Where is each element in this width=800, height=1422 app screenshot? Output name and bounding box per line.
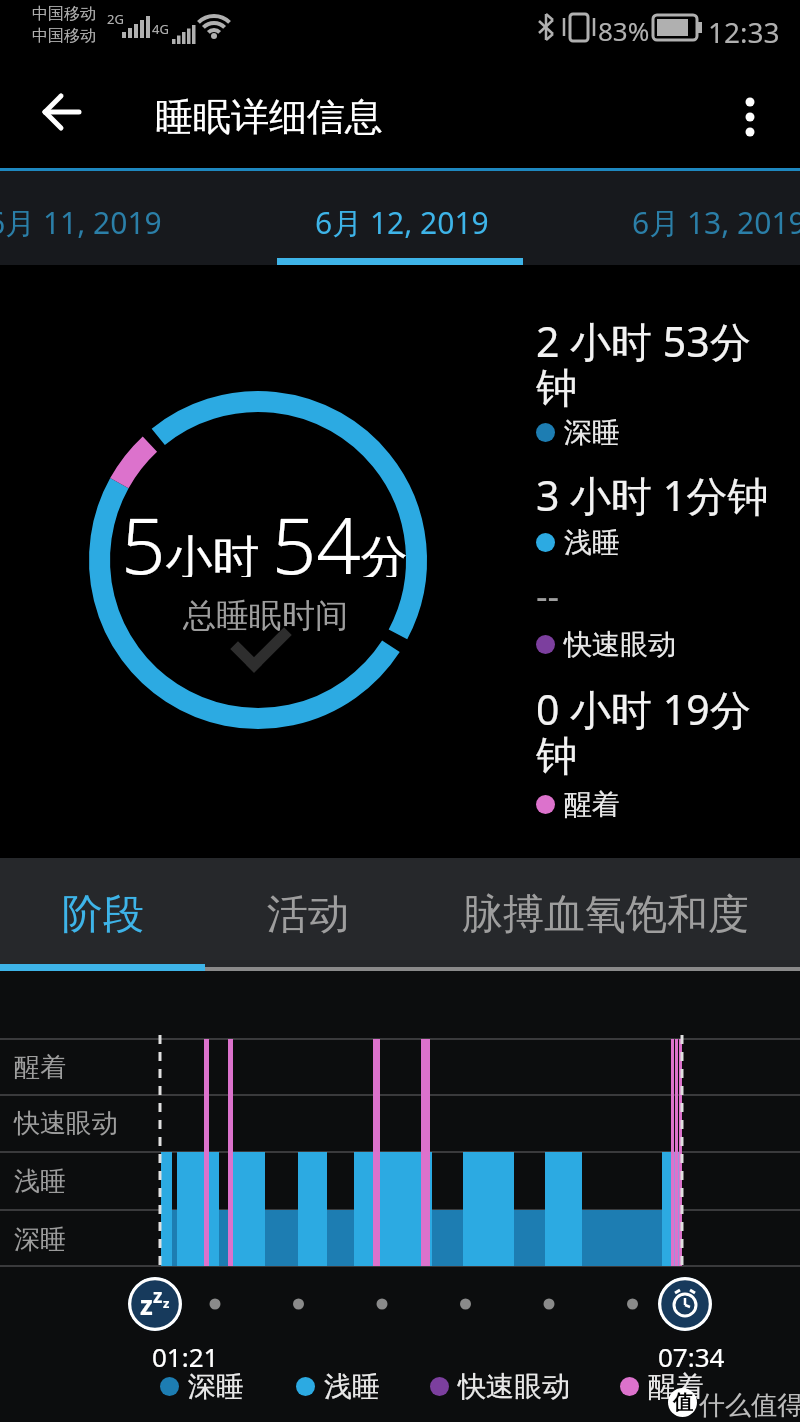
button[interactable] [30, 80, 94, 144]
button[interactable]: 阶段 [0, 858, 205, 971]
staticText: 6月 12, 2019 [315, 202, 489, 243]
button[interactable]: z [128, 1277, 182, 1331]
staticText: 2G [107, 10, 124, 28]
staticText: 5小时 54分 [121, 491, 408, 577]
staticText: 阶段 [62, 889, 144, 941]
staticText: 快速眼动 [14, 1107, 118, 1140]
button[interactable]: 活动 [205, 858, 410, 971]
staticText: 07:34 [658, 1339, 725, 1374]
staticText: 3 小时 1分钟 [536, 467, 769, 523]
staticText: z [153, 1283, 163, 1309]
staticText: 83% [598, 13, 650, 48]
staticText: 什么值得买 [699, 1389, 800, 1422]
button[interactable] [722, 89, 778, 145]
staticText: 中国移动 [32, 26, 96, 46]
staticText: 2 小时 53分 钟 [536, 313, 751, 415]
staticText: 01:21 [152, 1339, 219, 1374]
button[interactable] [658, 1277, 712, 1331]
staticText: 12:33 [708, 13, 780, 51]
staticText: 总睡眠时间 [183, 595, 348, 631]
staticText: 醒着 [14, 1051, 66, 1084]
staticText: 0 小时 19分 钟 [536, 681, 751, 783]
staticText: 快速眼动 [458, 1369, 570, 1404]
staticText: z [163, 1294, 170, 1312]
staticText: 深睡 [14, 1223, 66, 1256]
staticText: 深睡 [564, 415, 620, 450]
staticText: 浅睡 [324, 1369, 380, 1404]
staticText: 醒着 [648, 1369, 704, 1404]
staticText: 醒着 [564, 787, 620, 822]
staticText: 浅睡 [14, 1165, 66, 1198]
staticText: -- [536, 571, 560, 620]
staticText: 值 [673, 1390, 693, 1415]
button[interactable]: 6月 11, 2019 [0, 171, 174, 212]
staticText: 活动 [267, 889, 349, 941]
staticText: 快速眼动 [564, 627, 676, 662]
staticText: 深睡 [188, 1369, 244, 1404]
button[interactable]: 6月 12, 2019 [277, 171, 523, 265]
staticText: 睡眠详细信息 [155, 93, 383, 141]
staticText: 4G [152, 20, 169, 38]
staticText: z [140, 1287, 153, 1322]
button[interactable]: 6月 13, 2019 [0, 171, 174, 212]
staticText: 浅睡 [564, 525, 620, 560]
button[interactable]: 脉搏血氧饱和度 [410, 858, 800, 971]
staticText: 脉搏血氧饱和度 [462, 889, 749, 941]
staticText: 中国移动 [32, 4, 96, 24]
